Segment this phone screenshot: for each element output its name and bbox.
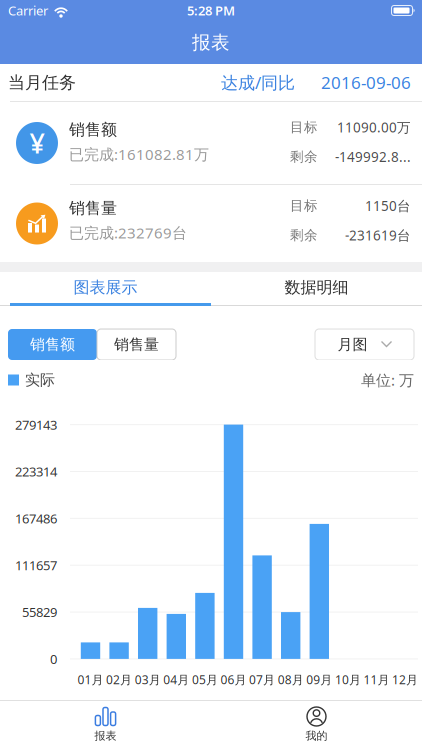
- staticText: 1150台: [365, 197, 411, 215]
- staticText: 5:28 PM: [187, 2, 235, 19]
- staticText: 剩余: [290, 148, 318, 165]
- staticText: 单位: 万: [361, 370, 414, 390]
- staticText: 销售额: [69, 120, 117, 140]
- staticText: 06月: [220, 671, 246, 688]
- staticText: 55829: [22, 603, 57, 621]
- staticText: 07月: [249, 671, 275, 688]
- staticText: -149992.8...: [335, 147, 411, 166]
- button[interactable]: 销售量: [97, 329, 176, 360]
- button[interactable]: 月图: [315, 329, 414, 360]
- staticText: 剩余: [290, 227, 318, 244]
- button[interactable]: 销售量: [0, 185, 422, 262]
- staticText: 2016-09-06: [321, 71, 411, 94]
- staticText: 目标: [290, 119, 318, 136]
- staticText: 223314: [15, 463, 57, 480]
- staticText: 11090.00万: [337, 118, 411, 136]
- staticText: 图表展示: [73, 277, 137, 298]
- staticText: 数据明细: [284, 277, 348, 298]
- staticText: 销售量: [114, 335, 159, 354]
- staticText: Carrier: [8, 2, 48, 19]
- staticText: 报表: [192, 31, 230, 54]
- staticText: 月图: [337, 335, 367, 354]
- staticText: 已完成:232769台: [69, 222, 187, 243]
- staticText: 目标: [290, 197, 318, 214]
- staticText: 05月: [192, 671, 218, 688]
- staticText: 279143: [15, 416, 57, 433]
- button[interactable]: 销售额: [8, 329, 97, 360]
- staticText: 111657: [15, 556, 57, 574]
- staticText: 10月: [335, 671, 361, 688]
- button[interactable]: 我的: [211, 700, 422, 743]
- staticText: 已完成:161082.81万: [69, 144, 209, 164]
- staticText: -231619台: [345, 226, 411, 244]
- staticText: 01月: [77, 671, 103, 688]
- button[interactable]: 报表: [0, 700, 211, 743]
- button[interactable]: 达成/同比: [221, 71, 295, 94]
- staticText: 11月: [363, 671, 389, 688]
- button[interactable]: 图表展示: [0, 272, 211, 303]
- button[interactable]: ¥: [0, 102, 422, 184]
- staticText: 02月: [106, 671, 132, 688]
- button[interactable]: 2016-09-06: [321, 71, 411, 94]
- staticText: 167486: [15, 509, 57, 527]
- button[interactable]: 数据明细: [211, 272, 422, 303]
- staticText: 报表: [94, 729, 116, 743]
- staticText: 03月: [135, 671, 161, 688]
- staticText: 销售额: [30, 335, 75, 354]
- staticText: 销售量: [69, 198, 117, 218]
- staticText: 我的: [305, 729, 327, 743]
- staticText: 达成/同比: [221, 71, 295, 94]
- staticText: 08月: [278, 671, 304, 688]
- staticText: 0: [50, 650, 57, 668]
- staticText: 04月: [163, 671, 189, 688]
- staticText: 12月: [392, 671, 418, 688]
- staticText: ¥: [29, 125, 44, 161]
- staticText: 实际: [25, 371, 55, 389]
- staticText: 当月任务: [8, 72, 76, 93]
- staticText: 09月: [306, 671, 332, 688]
